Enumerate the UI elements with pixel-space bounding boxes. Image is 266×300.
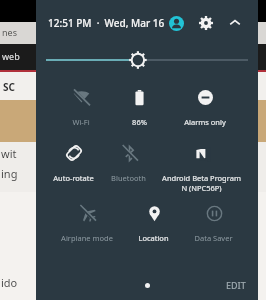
staticText: ido [1,275,18,290]
staticText: Alarms only [184,117,226,127]
staticText: Data Saver [194,233,233,243]
staticText: Wi-Fi [72,117,90,127]
staticText: web [2,50,20,62]
button[interactable]: User profile [165,12,187,34]
button[interactable]: 86% [126,80,152,131]
staticText: nes [2,26,17,38]
staticText: N (NPC56P) [181,183,222,192]
staticText: EDIT [226,279,246,291]
button[interactable]: Bluetooth [111,136,146,187]
staticText: Android Beta Program [162,173,241,183]
button[interactable]: Android Beta Program [162,136,241,196]
button[interactable]: Brightness [36,46,258,74]
staticText: Location [138,233,169,243]
button[interactable]: Location [138,196,169,247]
button[interactable]: EDIT [214,273,258,297]
button[interactable]: Auto-rotate [53,136,94,187]
staticText: ing [1,166,18,181]
staticText: 86% [132,117,147,127]
button[interactable]: Collapse [224,12,246,34]
staticText: Auto-rotate [53,173,94,183]
staticText: Airplane mode [61,233,113,243]
button[interactable]: Wi-Fi [68,80,94,131]
button[interactable]: Settings [195,12,217,34]
staticText: SC [3,80,15,94]
button[interactable]: Data Saver [194,196,233,247]
staticText: wit [1,146,17,161]
staticText: 12:51 PM · Wed, Mar 16 [48,16,165,30]
button[interactable]: Airplane mode [61,196,113,247]
button[interactable]: Alarms only [184,80,226,131]
staticText: Bluetooth [111,173,146,183]
